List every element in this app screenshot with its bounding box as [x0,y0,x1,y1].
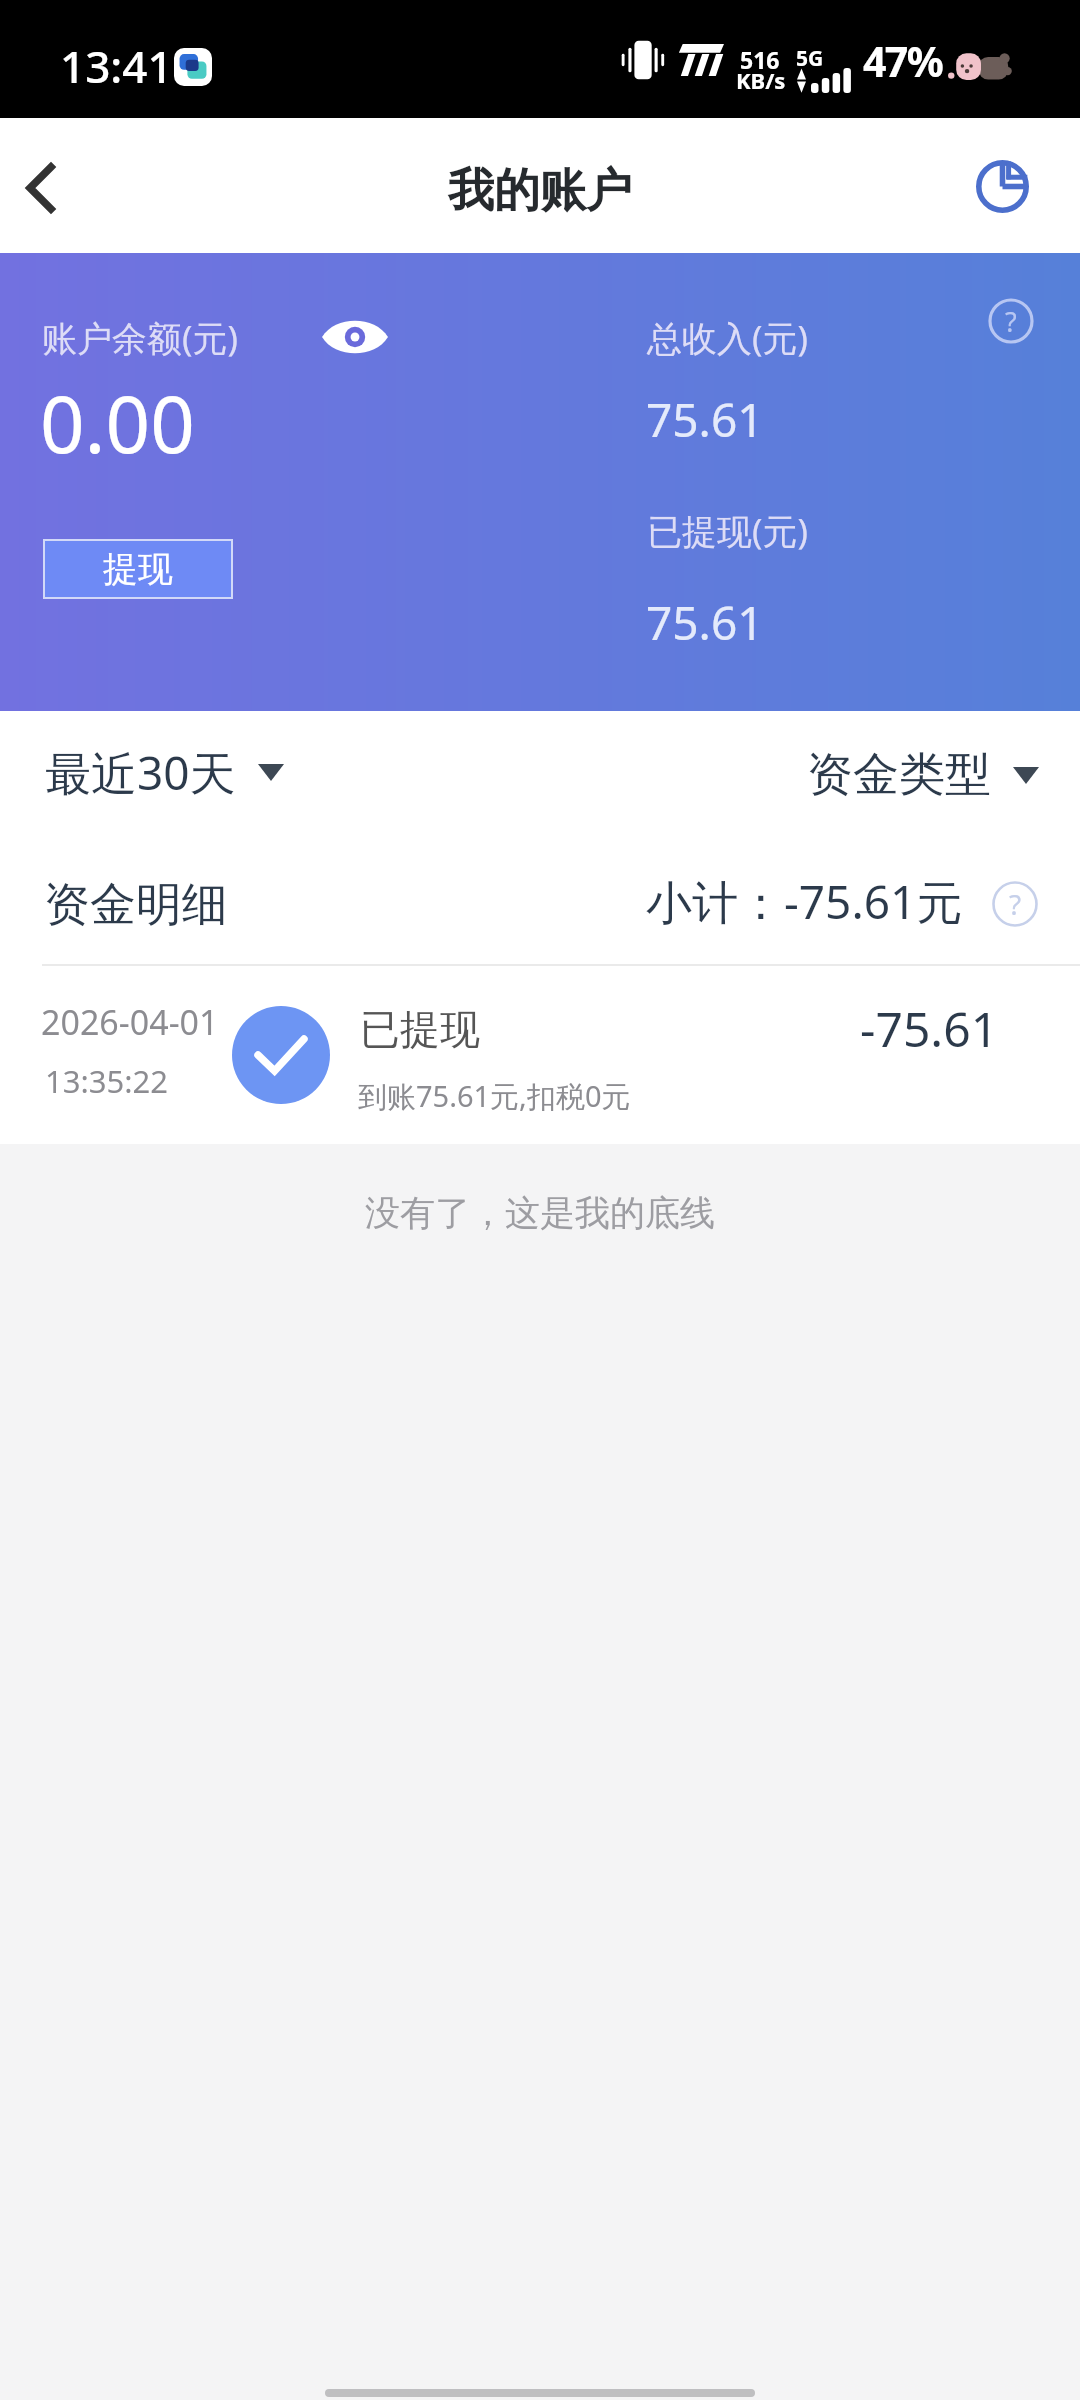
staticText: -75.61 [860,996,999,1061]
button[interactable]: 2026-04-01 [0,966,1080,1144]
staticText: 47% [863,33,943,89]
staticText: 我的账户 [448,162,632,220]
staticText: 资金类型 [807,746,991,804]
button[interactable]: 资金类型 [787,724,1059,826]
staticText: 5G [796,44,824,73]
button[interactable]: 最近30天 [25,719,304,826]
staticText: 75.61 [646,388,764,451]
staticText: 账户余额(元) [42,314,239,362]
staticText: 到账75.61元,扣税0元 [358,1076,631,1116]
button[interactable]: Help [972,282,1050,360]
staticText: 0.00 [40,370,195,476]
staticText: 最近30天 [45,741,236,804]
staticText: 已提现 [360,1004,480,1054]
staticText: ? [1009,885,1022,923]
button[interactable]: 提现 [43,539,233,599]
button[interactable]: Toggle balance visibility [314,311,396,363]
staticText: 小计：-75.61元 [646,870,963,933]
button[interactable]: Back [0,118,74,253]
staticText: 13:41 [60,36,173,96]
staticText: 516 [740,44,780,75]
staticText: 总收入(元) [647,314,809,362]
staticText: KB/s [736,65,786,95]
button[interactable]: Subtotal help [986,875,1044,933]
staticText: 资金明细 [44,876,228,934]
staticText: ? [1005,303,1017,340]
staticText: 75.61 [646,591,764,654]
staticText: 2026-04-01 [41,999,219,1045]
staticText: 13:35:22 [45,1060,169,1102]
button[interactable]: Statistics [960,144,1044,228]
staticText: 没有了，这是我的底线 [0,1191,1080,1235]
staticText: 已提现(元) [647,507,809,555]
staticText: 提现 [103,547,173,591]
